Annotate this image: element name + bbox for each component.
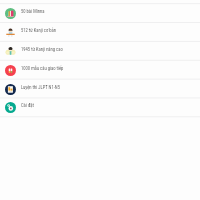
staticText: 1000 mẫu câu giao tiếp [21,66,64,71]
button[interactable]: Luyện thi JLPT N1-N5 [0,80,200,98]
button[interactable]: 512 từ Kanji cơ bản [0,23,200,41]
button[interactable]: 1000 mẫu câu giao tiếp [0,61,200,79]
staticText: 1945 từ Kanji nâng cao [21,47,63,52]
staticText: 50 bài Minna [21,9,45,14]
button[interactable]: Cài đặt [0,98,200,116]
staticText: 512 từ Kanji cơ bản [21,28,57,33]
button[interactable]: 50 bài Minna [0,4,200,22]
staticText: Luyện thi JLPT N1-N5 [21,85,60,90]
staticText: Cài đặt [21,103,34,108]
button[interactable]: 1945 từ Kanji nâng cao [0,42,200,60]
